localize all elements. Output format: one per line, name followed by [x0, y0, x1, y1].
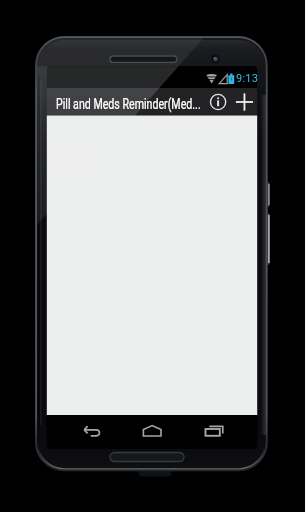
button[interactable]: [78, 419, 104, 443]
button[interactable]: [138, 419, 166, 443]
button[interactable]: [234, 91, 255, 113]
staticText: 9:13: [236, 72, 259, 85]
button[interactable]: [209, 92, 228, 112]
staticText: Pill and Meds Reminder(Med...: [56, 96, 201, 112]
button[interactable]: [199, 419, 228, 443]
